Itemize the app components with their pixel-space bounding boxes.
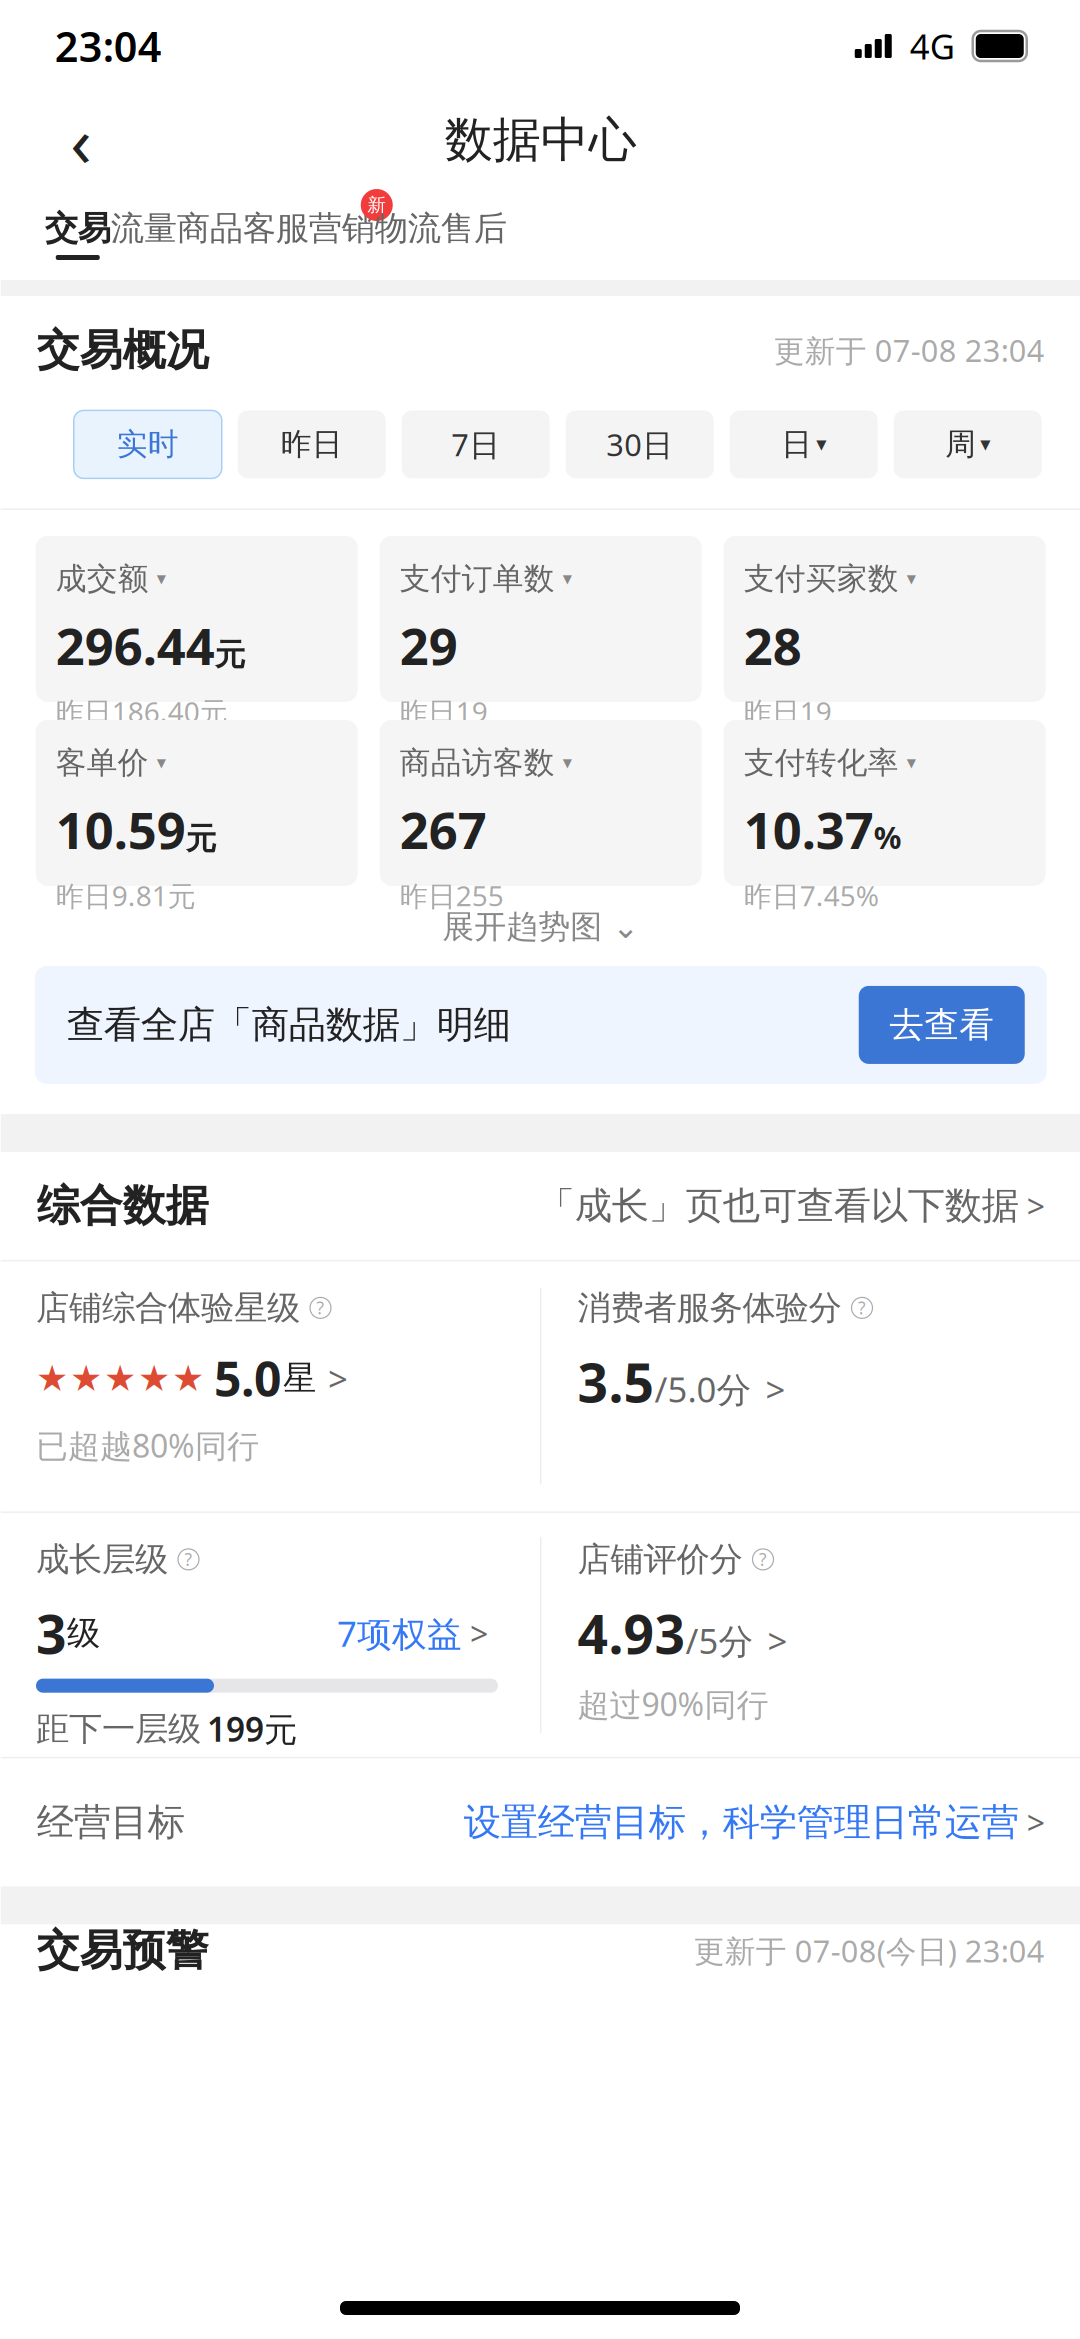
staticText: 昨日	[281, 426, 343, 463]
staticText: ▼	[563, 572, 572, 585]
staticText: 已超越80%同行	[36, 1424, 259, 1467]
staticText: 3	[36, 1598, 67, 1669]
staticText: ?	[759, 1548, 767, 1571]
staticText: 29	[400, 612, 458, 679]
button[interactable]: 成长层级	[36, 1513, 540, 1757]
staticText: 消费者服务体验分	[577, 1287, 841, 1328]
staticText: >	[328, 1355, 348, 1401]
staticText: 10.37	[744, 796, 874, 863]
staticText: ▼	[157, 756, 166, 769]
button[interactable]: 查看全店「商品数据」明细	[35, 966, 1047, 1084]
button[interactable]: 30日	[566, 410, 714, 478]
staticText: ?	[184, 1548, 192, 1571]
staticText: 综合数据	[37, 1180, 209, 1232]
button[interactable]: 7项权益	[337, 1610, 488, 1656]
staticText: ‹	[70, 94, 91, 186]
staticText: 3.5	[577, 1346, 654, 1417]
button[interactable]: 经营目标	[1, 1758, 1080, 1886]
staticText: >	[470, 1612, 488, 1654]
staticText: 新	[367, 194, 386, 216]
staticText: ▼	[157, 572, 166, 585]
button[interactable]: 支付买家数	[724, 536, 1046, 702]
staticText: 去查看	[889, 1004, 994, 1046]
button[interactable]: 支付订单数	[380, 536, 702, 702]
staticText: ?	[316, 1296, 324, 1319]
button[interactable]: 流量	[111, 188, 177, 280]
button[interactable]: 售后	[441, 188, 507, 280]
staticText: 4G	[910, 23, 955, 69]
button[interactable]: 客服	[243, 188, 309, 280]
staticText: 数据中心	[445, 110, 637, 169]
button[interactable]: 周	[894, 410, 1042, 478]
button[interactable]: 昨日	[238, 410, 386, 478]
staticText: 客服	[243, 208, 309, 249]
staticText: ★	[70, 1358, 102, 1399]
staticText: 设置经营目标，科学管理日常运营	[464, 1799, 1019, 1845]
staticText: 7日	[451, 424, 500, 465]
staticText: 昨日255	[400, 877, 504, 914]
staticText: ★	[36, 1358, 68, 1399]
staticText: 更新于 07-08(今日) 23:04	[694, 1930, 1045, 1971]
button[interactable]: 营销	[309, 188, 375, 280]
staticText: 商品	[177, 208, 243, 249]
button[interactable]: 支付转化率	[724, 720, 1046, 886]
button[interactable]: 消费者服务体验分	[577, 1261, 1080, 1511]
staticText: 成交额	[56, 560, 149, 598]
button[interactable]: 日	[730, 410, 878, 478]
staticText: ⌄	[612, 909, 639, 945]
button[interactable]: 商品	[177, 188, 243, 280]
staticText: 更新于 07-08 23:04	[774, 330, 1045, 370]
staticText: ★	[172, 1358, 204, 1399]
button[interactable]: 展开趋势图	[1, 896, 1080, 958]
staticText: 超过90%同行	[577, 1683, 768, 1725]
staticText: 周	[945, 426, 976, 463]
button[interactable]: 7日	[402, 410, 550, 478]
staticText: 交易概况	[37, 324, 209, 376]
button[interactable]: 店铺评价分	[577, 1513, 1080, 1757]
staticText: ▼	[816, 437, 826, 452]
staticText: 实时	[117, 426, 179, 463]
staticText: 昨日9.81元	[56, 877, 196, 914]
button[interactable]: 交易	[45, 188, 111, 280]
staticText: %	[874, 817, 902, 857]
staticText: ★	[138, 1358, 170, 1399]
staticText: 10.59	[56, 796, 186, 863]
button[interactable]: 客单价	[36, 720, 358, 886]
staticText: 199元	[207, 1707, 297, 1751]
staticText: 昨日19	[400, 693, 488, 730]
staticText: 昨日19	[744, 693, 832, 730]
staticText: ▼	[980, 437, 990, 452]
staticText: 物流	[375, 208, 441, 249]
button[interactable]: 物流	[375, 188, 441, 280]
button[interactable]: 成交额	[36, 536, 358, 702]
staticText: 昨日7.45%	[744, 877, 879, 914]
staticText: 成长层级	[36, 1539, 168, 1580]
staticText: >	[765, 1366, 785, 1412]
button[interactable]: 实时	[74, 410, 222, 478]
staticText: ▼	[563, 756, 572, 769]
staticText: >	[1027, 1185, 1045, 1227]
staticText: ▼	[907, 756, 916, 769]
staticText: 售后	[441, 208, 507, 249]
staticText: 23:04	[55, 19, 162, 73]
staticText: 流量	[111, 208, 177, 249]
staticText: 经营目标	[37, 1799, 185, 1845]
staticText: 296.44	[56, 612, 215, 679]
button[interactable]: 商品访客数	[380, 720, 702, 886]
staticText: 查看全店「商品数据」明细	[67, 1002, 511, 1048]
button[interactable]: 店铺综合体验星级	[36, 1261, 540, 1511]
button[interactable]: Back	[41, 100, 121, 180]
staticText: 交易	[45, 208, 111, 249]
staticText: ▼	[907, 572, 916, 585]
staticText: 30日	[606, 424, 673, 465]
staticText: 7项权益	[337, 1610, 462, 1656]
staticText: /5.0分	[654, 1366, 751, 1412]
staticText: 营销	[309, 208, 375, 249]
staticText: /5分	[685, 1617, 753, 1663]
staticText: 5.0	[214, 1346, 281, 1410]
staticText: 28	[744, 612, 802, 679]
button[interactable]: 「成长」页也可查看以下数据	[538, 1183, 1045, 1229]
staticText: 星	[283, 1358, 316, 1399]
staticText: ?	[858, 1296, 866, 1319]
staticText: 昨日186.40元	[56, 693, 228, 730]
